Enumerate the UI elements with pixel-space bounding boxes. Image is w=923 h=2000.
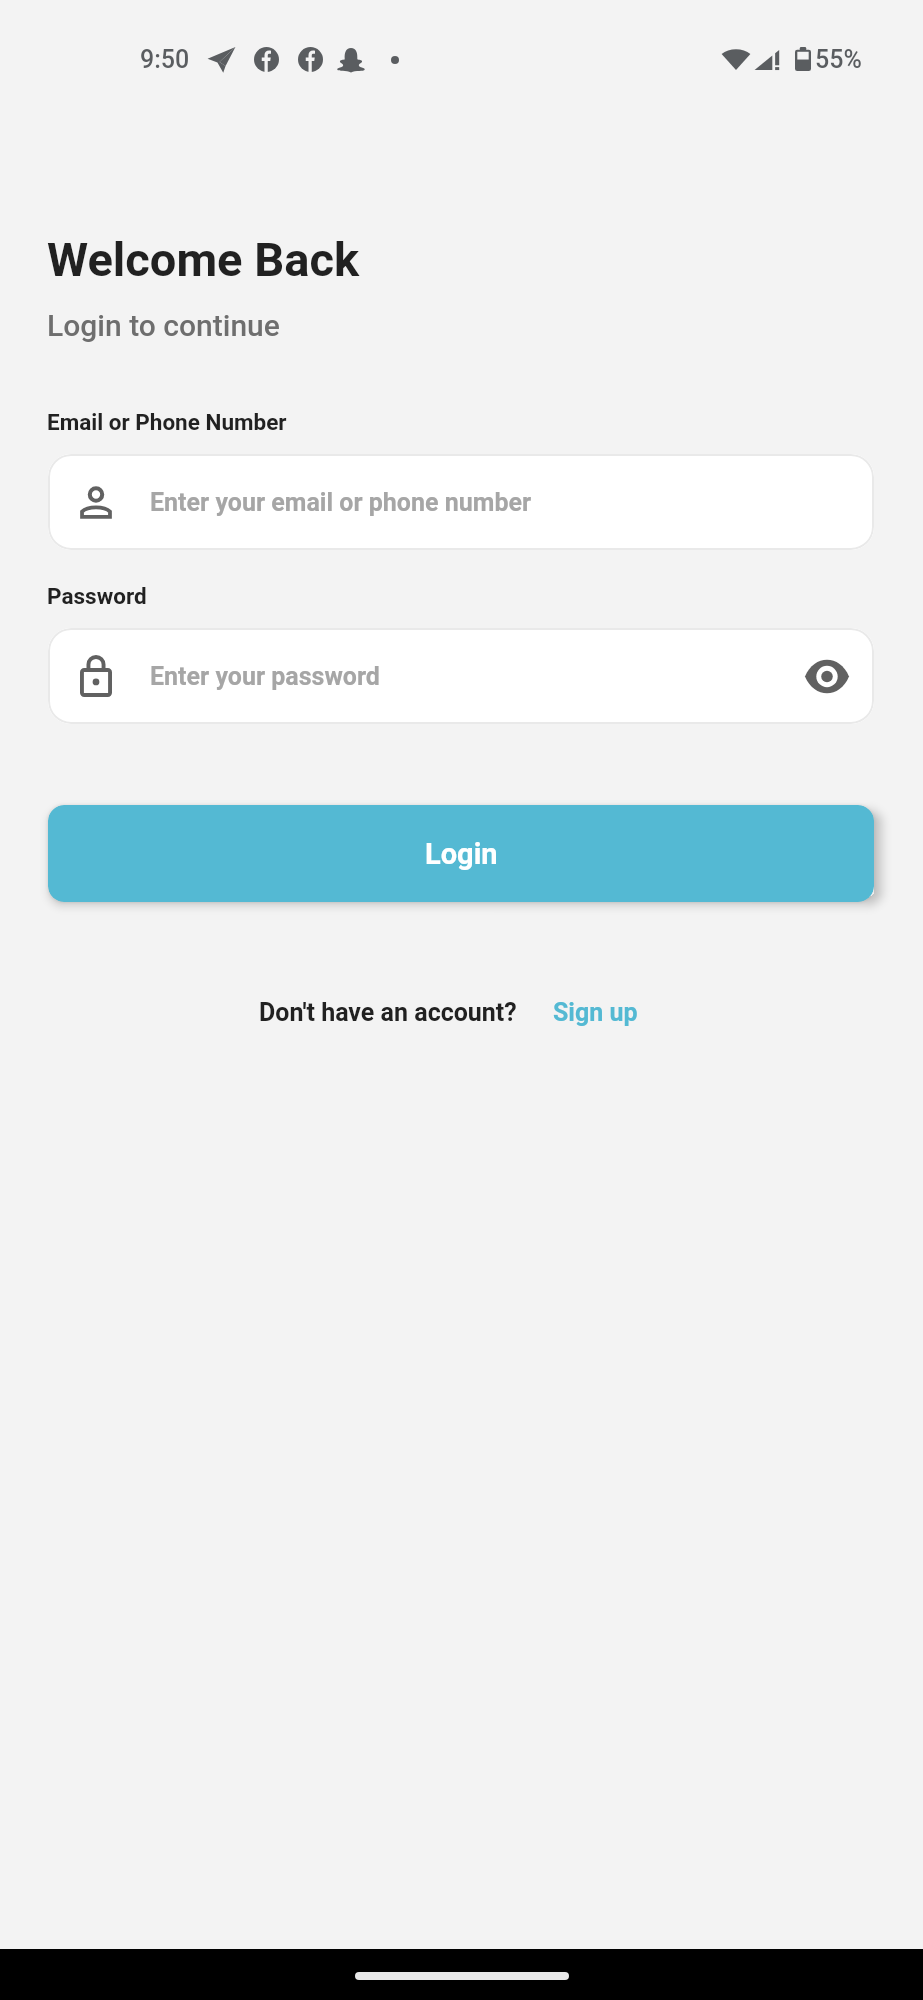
staticText: Enter your password bbox=[150, 662, 380, 691]
staticText: Email or Phone Number bbox=[47, 409, 287, 435]
button[interactable]: Show password bbox=[796, 645, 858, 707]
button[interactable]: Enter your password bbox=[48, 628, 874, 724]
staticText: Don't have an account? bbox=[259, 998, 517, 1027]
button[interactable]: Enter your email or phone number bbox=[48, 454, 874, 550]
staticText: Welcome Back bbox=[47, 232, 360, 287]
staticText: Login to continue bbox=[47, 308, 280, 343]
button[interactable]: Sign up bbox=[553, 998, 638, 1027]
staticText: 9:50 bbox=[140, 45, 190, 74]
other: Home bbox=[355, 1972, 569, 1980]
staticText: Sign up bbox=[553, 998, 638, 1027]
staticText: Enter your email or phone number bbox=[150, 488, 532, 517]
staticText: Password bbox=[47, 583, 147, 609]
button[interactable]: Login bbox=[48, 805, 874, 902]
staticText: 55% bbox=[815, 45, 862, 74]
staticText: Login bbox=[425, 837, 498, 871]
